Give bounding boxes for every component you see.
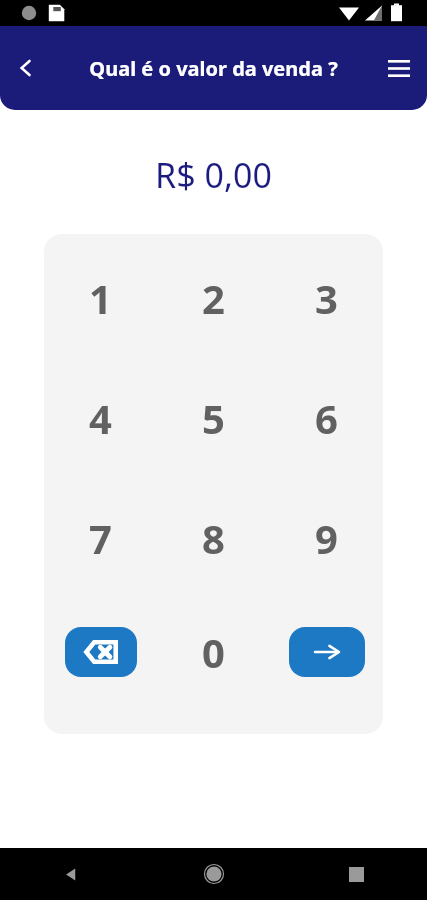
button[interactable]: 2 xyxy=(157,262,270,334)
staticText: 7 xyxy=(89,511,112,565)
staticText: R$ 0,00 xyxy=(155,152,272,198)
button[interactable]: 6 xyxy=(270,382,383,454)
button[interactable]: Confirm xyxy=(289,627,365,677)
staticText: 1 xyxy=(89,271,112,325)
staticText: 3 xyxy=(315,271,338,325)
button[interactable]: 3 xyxy=(270,262,383,334)
staticText: 2 xyxy=(202,271,225,325)
button[interactable]: 9 xyxy=(270,502,383,574)
staticText: 5 xyxy=(202,391,225,445)
button[interactable]: 0 xyxy=(157,616,270,688)
button[interactable]: 7 xyxy=(44,502,157,574)
button[interactable]: 8 xyxy=(157,502,270,574)
button[interactable]: R$ 0,00 xyxy=(44,137,383,213)
button[interactable]: Recent apps xyxy=(285,848,427,900)
staticText: 4 xyxy=(89,391,112,445)
staticText: 9 xyxy=(315,511,338,565)
button[interactable]: Back xyxy=(4,46,48,90)
button[interactable]: Home xyxy=(143,848,285,900)
button[interactable]: Backspace xyxy=(65,627,137,677)
staticText: 6 xyxy=(315,391,338,445)
button[interactable]: 5 xyxy=(157,382,270,454)
button[interactable]: 1 xyxy=(44,262,157,334)
button[interactable]: 4 xyxy=(44,382,157,454)
button[interactable]: Menu xyxy=(377,46,421,90)
staticText: 8 xyxy=(202,511,225,565)
staticText: Qual é o valor da venda ? xyxy=(89,55,338,82)
staticText: 0 xyxy=(202,625,225,679)
button[interactable]: Back xyxy=(0,848,143,900)
